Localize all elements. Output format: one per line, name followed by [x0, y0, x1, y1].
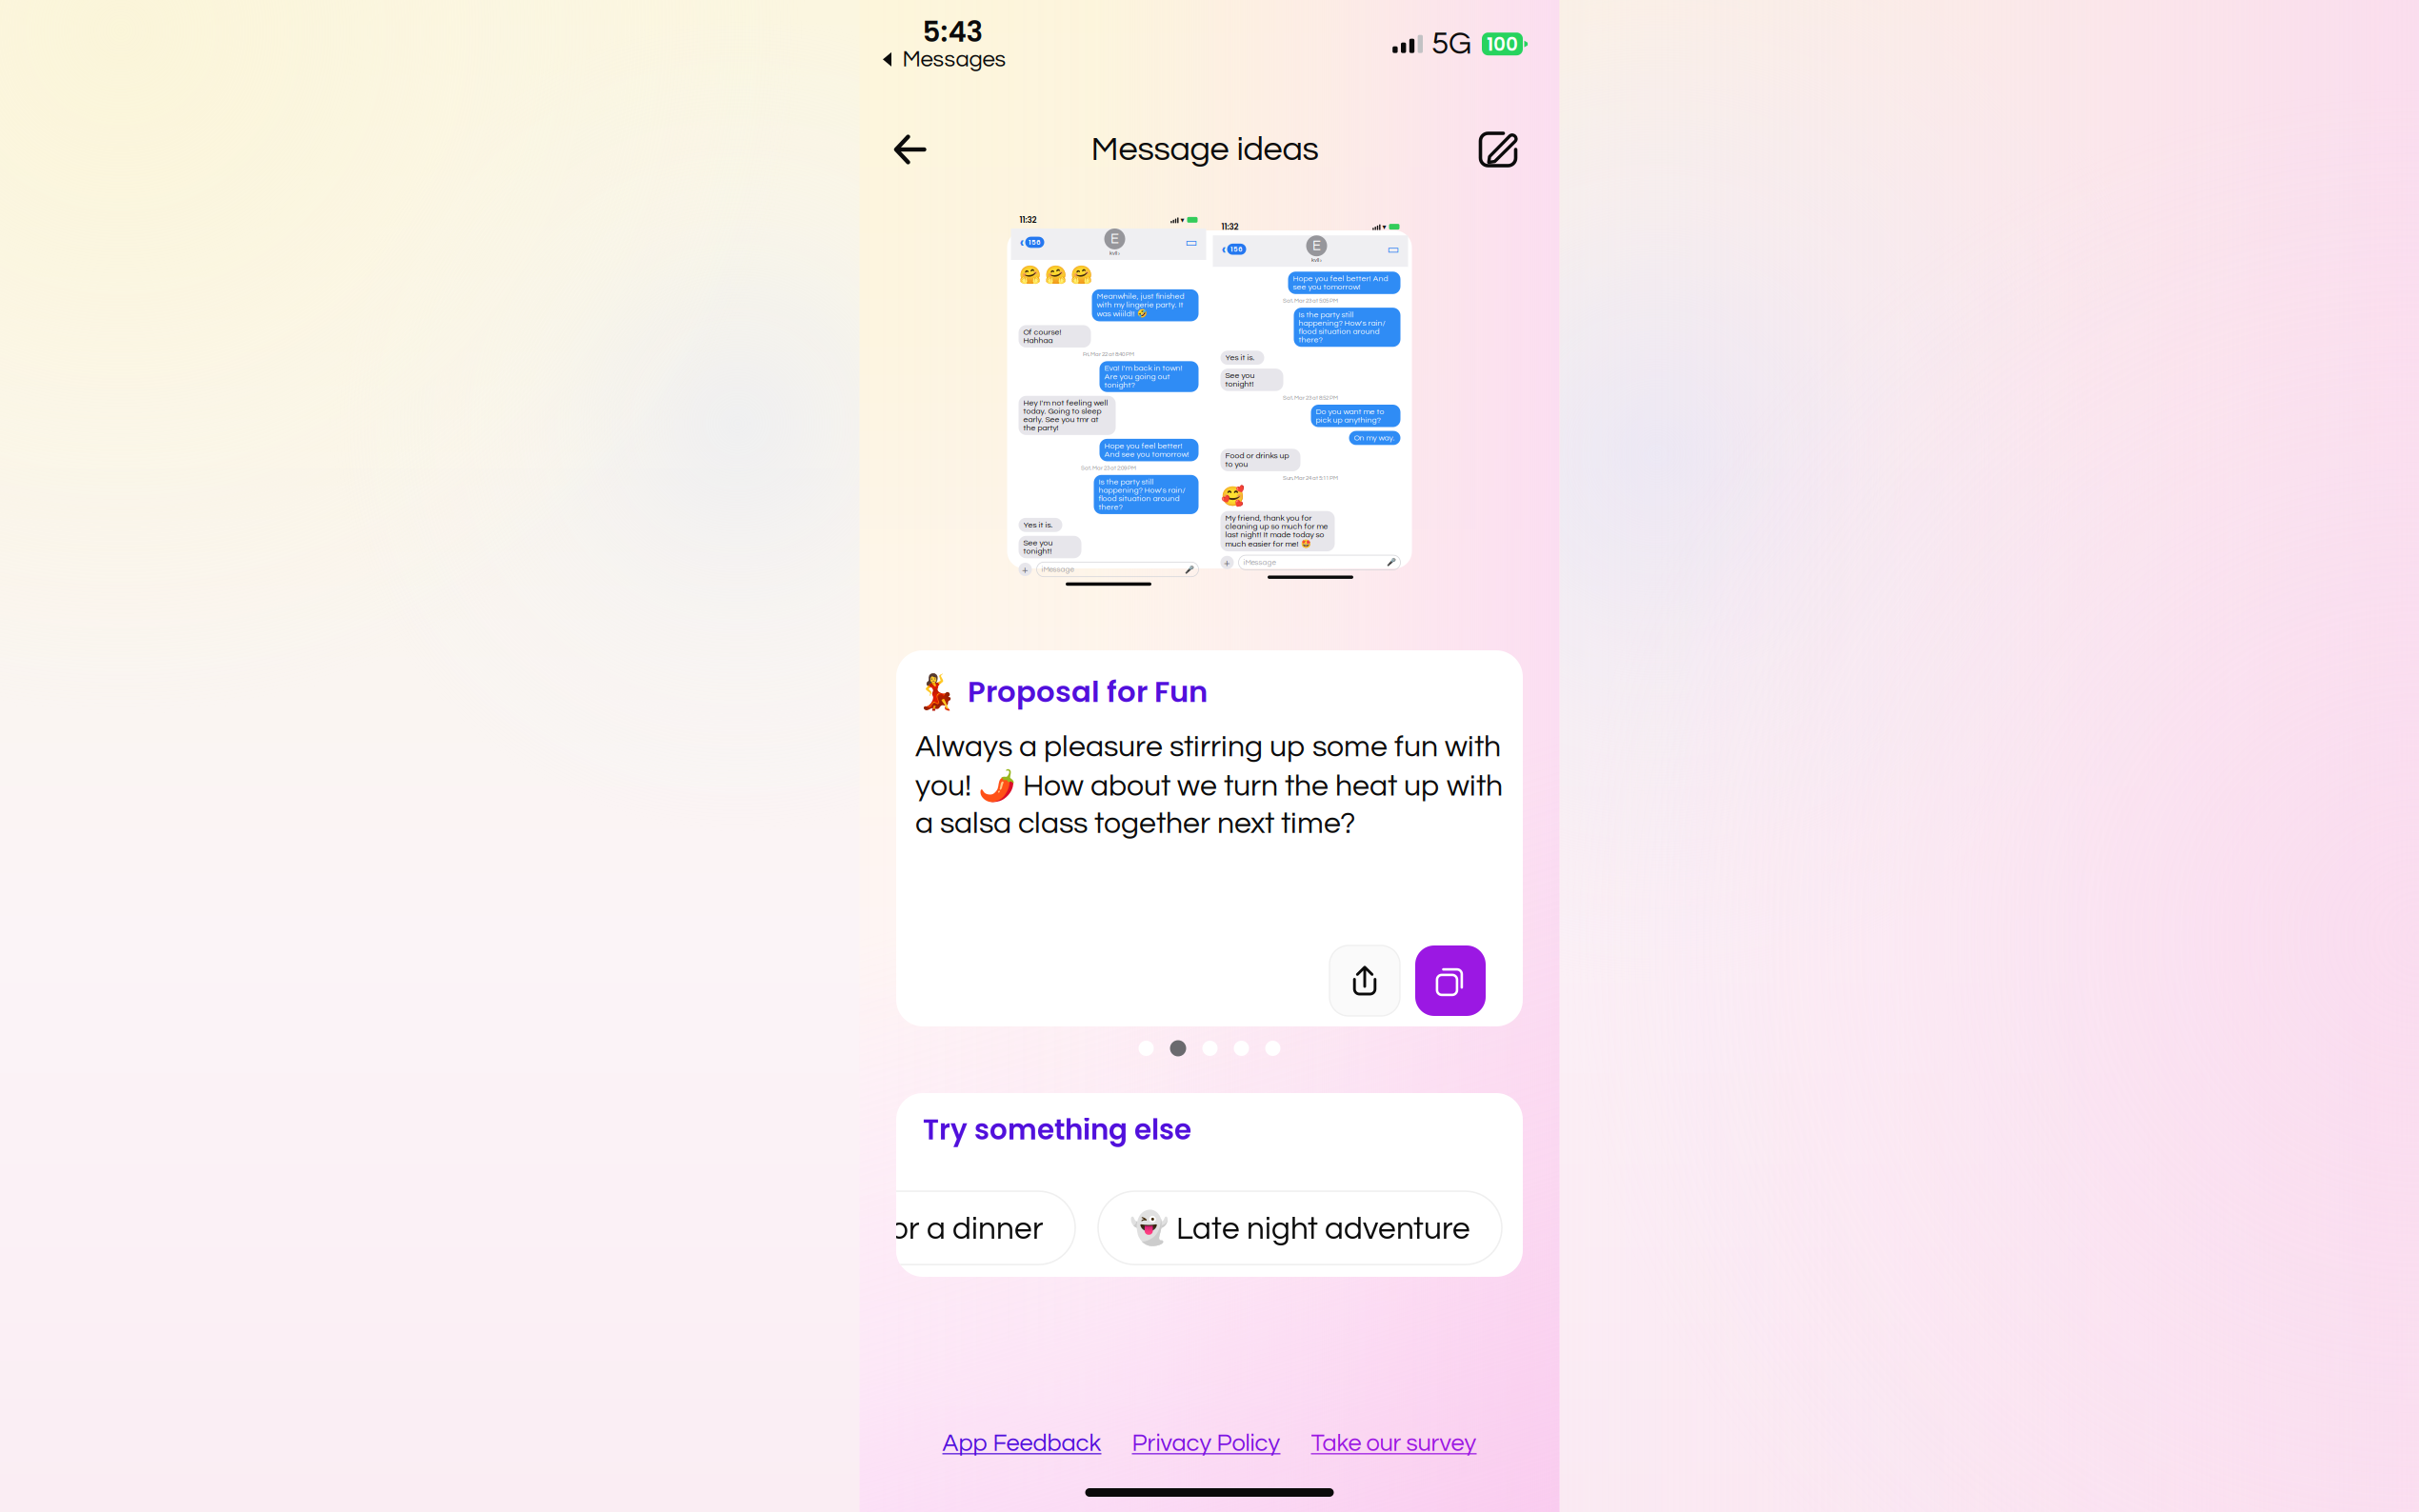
staticText: E	[1312, 239, 1321, 253]
staticText: Food or drinks up to you	[1225, 452, 1289, 468]
staticText: 👻 Late night adventure	[1130, 1209, 1470, 1247]
staticText: Privacy Policy	[1132, 1431, 1280, 1456]
staticText: Proposal for Fun	[968, 671, 1208, 712]
staticText: 🎤	[1184, 565, 1194, 574]
staticText: See you tonight!	[1225, 371, 1255, 388]
staticText: Is the party still happening? How's rain…	[1299, 310, 1385, 344]
staticText: 5G	[1431, 28, 1471, 60]
staticText: +	[1022, 563, 1029, 575]
staticText: ▾	[1382, 222, 1386, 231]
staticText: Do you want me to pick up anything?	[1316, 408, 1384, 424]
staticText: 100	[1487, 31, 1518, 57]
staticText: 🍝 Ask for a dinner	[775, 1209, 1044, 1247]
staticText: 156	[1230, 244, 1243, 254]
staticText: 🎤	[1386, 558, 1396, 567]
staticText: E	[1110, 232, 1119, 246]
staticText: iMessage	[1243, 559, 1276, 566]
button[interactable]: 👻 Late night adventure	[1098, 1191, 1502, 1265]
staticText: 11:32	[1221, 221, 1239, 233]
staticText: Meanwhile, just finished with my lingeri…	[1097, 292, 1184, 318]
button[interactable]: App Feedback	[942, 1431, 1101, 1456]
button[interactable]: Copy	[1415, 945, 1486, 1016]
staticText: ‹	[1020, 232, 1024, 253]
staticText: kvll ›	[1110, 250, 1120, 256]
button[interactable]: Privacy Policy	[1132, 1431, 1280, 1456]
staticText: 💃	[915, 672, 958, 712]
staticText: Eva! I'm back in town! Are you going out…	[1104, 364, 1182, 389]
staticText: Messages	[902, 48, 1006, 71]
button[interactable]: Share	[1329, 945, 1400, 1016]
staticText: My friend, thank you for cleaning up so …	[1225, 514, 1328, 549]
staticText: iMessage	[1041, 565, 1074, 573]
staticText: 11:32	[1020, 214, 1037, 226]
staticText: Hope you feel better! And see you tomorr…	[1293, 274, 1388, 291]
staticText: Is the party still happening? How's rain…	[1099, 478, 1185, 511]
staticText: +	[1224, 557, 1230, 568]
staticText: 🥰	[1220, 485, 1244, 507]
button[interactable]: 🍝 Ask for a dinner	[744, 1191, 1075, 1265]
staticText: ▭	[1185, 235, 1198, 250]
staticText: Yes it is.	[1023, 521, 1053, 529]
staticText: Of course! Hahhaa	[1023, 328, 1061, 345]
staticText: Sun, Mar 24 at 5:11 PM	[1283, 475, 1338, 481]
staticText: Sat, Mar 23 at 5:05 PM	[1283, 298, 1338, 304]
staticText: 5:43	[922, 12, 983, 52]
staticText: 🤗 🤗 🤗	[1019, 265, 1092, 286]
staticText: Message ideas	[1091, 132, 1319, 167]
staticText: Take our survey	[1311, 1431, 1477, 1456]
staticText: Sat, Mar 23 at 8:52 PM	[1283, 395, 1338, 401]
staticText: On my way.	[1354, 434, 1395, 442]
staticText: ▭	[1387, 242, 1399, 257]
staticText: Sat, Mar 23 at 2:09 PM	[1081, 465, 1136, 471]
staticText: kvll ›	[1311, 257, 1322, 263]
staticText: Try something else	[923, 1110, 1191, 1149]
button[interactable]: Compose	[1470, 120, 1529, 179]
staticText: Fri, Mar 22 at 8:40 PM	[1083, 351, 1134, 357]
staticText: Always a pleasure stirring up some fun w…	[915, 731, 1503, 839]
staticText: Hope you feel better! And see you tomorr…	[1104, 442, 1189, 458]
staticText: See you tonight!	[1023, 539, 1053, 555]
staticText: ▾	[1180, 215, 1184, 224]
staticText: ‹	[1221, 239, 1226, 260]
button[interactable]: Back	[880, 120, 940, 179]
staticText: Yes it is.	[1225, 354, 1255, 362]
button[interactable]: Take our survey	[1311, 1431, 1477, 1456]
staticText: 156	[1029, 237, 1041, 247]
staticText: App Feedback	[942, 1431, 1101, 1456]
staticText: Hey I'm not feeling well today. Going to…	[1023, 399, 1108, 432]
